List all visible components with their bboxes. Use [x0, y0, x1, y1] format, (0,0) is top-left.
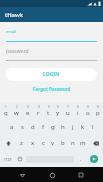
- button[interactable]: 5: [43, 103, 53, 119]
- button[interactable]: a: [6, 119, 17, 135]
- button[interactable]: k: [78, 119, 88, 135]
- button[interactable]: c: [38, 135, 48, 151]
- button[interactable]: 9: [83, 103, 93, 119]
- staticText: tHawk: [5, 11, 23, 19]
- staticText: b: [61, 139, 65, 147]
- staticText: 4: [38, 105, 40, 109]
- button[interactable]: n: [68, 135, 78, 151]
- staticText: j: [72, 123, 74, 131]
- button[interactable]: 1: [0, 103, 11, 119]
- button[interactable]: b: [58, 135, 68, 151]
- staticText: d: [31, 123, 35, 131]
- button[interactable]: Forgot Password: [6, 86, 97, 92]
- button[interactable]: 0: [93, 103, 103, 119]
- staticText: c: [42, 139, 45, 147]
- staticText: q: [4, 109, 8, 117]
- staticText: password: [6, 48, 29, 55]
- staticText: 2: [16, 105, 18, 109]
- staticText: f: [42, 123, 45, 131]
- button[interactable]: Home: [45, 168, 59, 182]
- button[interactable]: 4: [33, 103, 43, 119]
- staticText: 3: [27, 105, 29, 109]
- button[interactable]: d: [28, 119, 38, 135]
- staticText: 9: [87, 105, 89, 109]
- button[interactable]: s: [17, 119, 28, 135]
- staticText: .: [80, 156, 82, 163]
- button[interactable]: Send: [86, 151, 102, 167]
- staticText: v: [51, 139, 55, 147]
- staticText: 6: [57, 105, 59, 109]
- button[interactable]: 2: [11, 103, 22, 119]
- button[interactable]: 8: [73, 103, 83, 119]
- staticText: n: [71, 139, 75, 147]
- staticText: r: [37, 109, 40, 117]
- staticText: w: [14, 109, 19, 117]
- button[interactable]: v: [48, 135, 58, 151]
- button[interactable]: f: [38, 119, 48, 135]
- staticText: 7: [67, 105, 69, 109]
- staticText: k: [81, 123, 85, 131]
- staticText: o: [86, 109, 90, 117]
- staticText: g: [51, 123, 55, 131]
- staticText: LOGIN: [43, 71, 60, 78]
- button[interactable]: Emoji: [14, 151, 25, 167]
- staticText: 8: [77, 105, 79, 109]
- staticText: s: [21, 123, 24, 131]
- button[interactable]: LOGIN: [6, 68, 97, 81]
- button[interactable]: m: [78, 135, 88, 151]
- button[interactable]: x: [27, 135, 38, 151]
- button[interactable]: Back: [15, 168, 29, 182]
- button[interactable]: 3: [22, 103, 33, 119]
- button[interactable]: Backspace: [88, 135, 103, 151]
- button[interactable]: l: [88, 119, 98, 135]
- staticText: u: [66, 109, 70, 117]
- button[interactable]: h: [58, 119, 68, 135]
- staticText: x: [31, 139, 35, 147]
- staticText: ?123: [4, 157, 12, 162]
- button[interactable]: g: [48, 119, 58, 135]
- staticText: email: [6, 29, 17, 34]
- staticText: z: [20, 139, 23, 147]
- button[interactable]: j: [68, 119, 78, 135]
- staticText: l: [92, 123, 94, 131]
- button[interactable]: z: [16, 135, 27, 151]
- staticText: 0: [97, 105, 99, 109]
- button[interactable]: Shift: [0, 135, 16, 151]
- staticText: Forgot Password: [33, 86, 71, 92]
- staticText: a: [10, 123, 14, 131]
- button[interactable]: ?123: [1, 151, 14, 167]
- button[interactable]: email: [6, 29, 97, 42]
- staticText: m: [80, 139, 86, 147]
- staticText: y: [56, 109, 60, 117]
- staticText: 1: [5, 105, 7, 109]
- staticText: h: [61, 123, 65, 131]
- staticText: e: [26, 109, 30, 117]
- button[interactable]: .: [75, 151, 86, 167]
- button[interactable]: 6: [53, 103, 63, 119]
- staticText: t: [47, 109, 50, 117]
- button[interactable]: Recent apps: [74, 168, 88, 182]
- staticText: i: [77, 109, 79, 117]
- staticText: p: [96, 109, 100, 117]
- staticText: 5: [48, 105, 50, 109]
- button[interactable]: password: [6, 48, 97, 61]
- button[interactable]: 7: [63, 103, 73, 119]
